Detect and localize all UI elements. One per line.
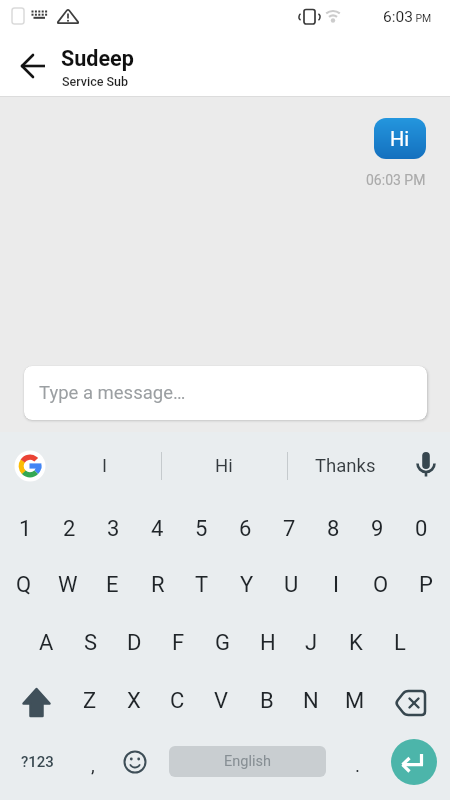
staticText: 0	[415, 516, 428, 542]
button[interactable]: X	[111, 673, 156, 729]
button[interactable]: 7	[267, 501, 312, 557]
staticText: P	[419, 572, 433, 598]
staticText: E	[106, 572, 119, 598]
button[interactable]: O	[358, 557, 403, 613]
button[interactable]: N	[288, 673, 333, 729]
staticText: 1	[19, 516, 32, 542]
button[interactable]: G	[200, 615, 245, 671]
staticText: ?123	[21, 753, 54, 771]
staticText: Hi	[390, 127, 410, 150]
staticText: B	[260, 688, 274, 714]
button[interactable]: A	[24, 615, 69, 671]
button[interactable]: English	[169, 746, 326, 777]
staticText: 9	[371, 516, 384, 542]
staticText: 06:03 PM	[366, 172, 426, 188]
staticText: N	[303, 688, 319, 714]
button[interactable]: I	[52, 437, 158, 495]
button[interactable]: L	[377, 615, 422, 671]
staticText: 8	[327, 516, 340, 542]
button[interactable]	[9, 42, 57, 90]
staticText: O	[373, 572, 389, 598]
button[interactable]: .	[335, 737, 380, 793]
staticText: 3	[107, 516, 120, 542]
staticText: C	[170, 688, 185, 714]
staticText: Thanks	[315, 455, 376, 477]
staticText: 2	[63, 516, 76, 542]
staticText: K	[349, 630, 363, 656]
button[interactable]: 8	[311, 501, 356, 557]
staticText: 5	[195, 516, 208, 542]
button[interactable]: 5	[179, 501, 224, 557]
staticText: A	[39, 630, 54, 656]
staticText: H	[260, 630, 276, 656]
staticText: .	[355, 754, 361, 776]
button[interactable]: R	[135, 557, 180, 613]
button[interactable]: Z	[67, 673, 112, 729]
staticText: D	[127, 630, 142, 656]
staticText: Z	[83, 688, 97, 714]
staticText: ,	[91, 754, 95, 776]
button[interactable]: T	[179, 557, 224, 613]
button[interactable]: P	[403, 557, 448, 613]
button[interactable]: S	[68, 615, 113, 671]
staticText: U	[284, 572, 299, 598]
button[interactable]: Hi	[374, 118, 426, 159]
staticText: 6:03 PM	[383, 8, 432, 26]
button[interactable]: Hi	[164, 437, 284, 495]
staticText: S	[84, 630, 98, 656]
button[interactable]: Thanks	[290, 437, 400, 495]
button[interactable]: F	[156, 615, 201, 671]
staticText: T	[195, 572, 209, 598]
staticText: Type a message…	[39, 382, 186, 404]
staticText: L	[394, 630, 406, 656]
staticText: Hi	[215, 455, 233, 477]
button[interactable]: E	[90, 557, 135, 613]
button[interactable]: 4	[135, 501, 180, 557]
staticText: I	[102, 455, 108, 477]
button[interactable]: 3	[91, 501, 136, 557]
button[interactable]: D	[112, 615, 157, 671]
button[interactable]: C	[155, 673, 200, 729]
staticText: J	[305, 630, 318, 656]
button[interactable]: I	[313, 557, 358, 613]
button[interactable]: W	[45, 557, 90, 613]
button[interactable]: H	[245, 615, 290, 671]
button[interactable]	[115, 736, 155, 788]
staticText: W	[58, 572, 78, 598]
button[interactable]: ?123	[8, 734, 66, 790]
staticText: G	[215, 630, 230, 656]
button[interactable]: U	[269, 557, 314, 613]
button[interactable]	[390, 675, 435, 727]
staticText: Y	[240, 572, 254, 598]
button[interactable]: Q	[1, 557, 46, 613]
button[interactable]: B	[244, 673, 289, 729]
button[interactable]: 1	[3, 501, 48, 557]
staticText: I	[333, 572, 339, 598]
staticText: Sudeep	[61, 46, 134, 71]
button[interactable]	[14, 675, 59, 727]
staticText: X	[127, 688, 141, 714]
button[interactable]	[12, 448, 48, 484]
staticText: English	[224, 753, 271, 770]
button[interactable]: K	[333, 615, 378, 671]
staticText: 7	[283, 516, 296, 542]
button[interactable]: 6	[223, 501, 268, 557]
staticText: R	[151, 572, 165, 598]
staticText: 6	[239, 516, 252, 542]
button[interactable]: J	[289, 615, 334, 671]
staticText: F	[172, 630, 185, 656]
button[interactable]: V	[199, 673, 244, 729]
button[interactable]: ,	[70, 737, 115, 793]
button[interactable]	[391, 739, 437, 785]
button[interactable]: 2	[47, 501, 92, 557]
button[interactable]: 0	[399, 501, 444, 557]
button[interactable]: Type a message…	[24, 366, 427, 420]
staticText: 4	[151, 516, 164, 542]
staticText: V	[214, 688, 229, 714]
staticText: Service Sub	[62, 74, 129, 89]
button[interactable]: Y	[224, 557, 269, 613]
staticText: M	[345, 688, 365, 714]
button[interactable]: M	[332, 673, 377, 729]
button[interactable]	[406, 438, 446, 494]
button[interactable]: 9	[355, 501, 400, 557]
